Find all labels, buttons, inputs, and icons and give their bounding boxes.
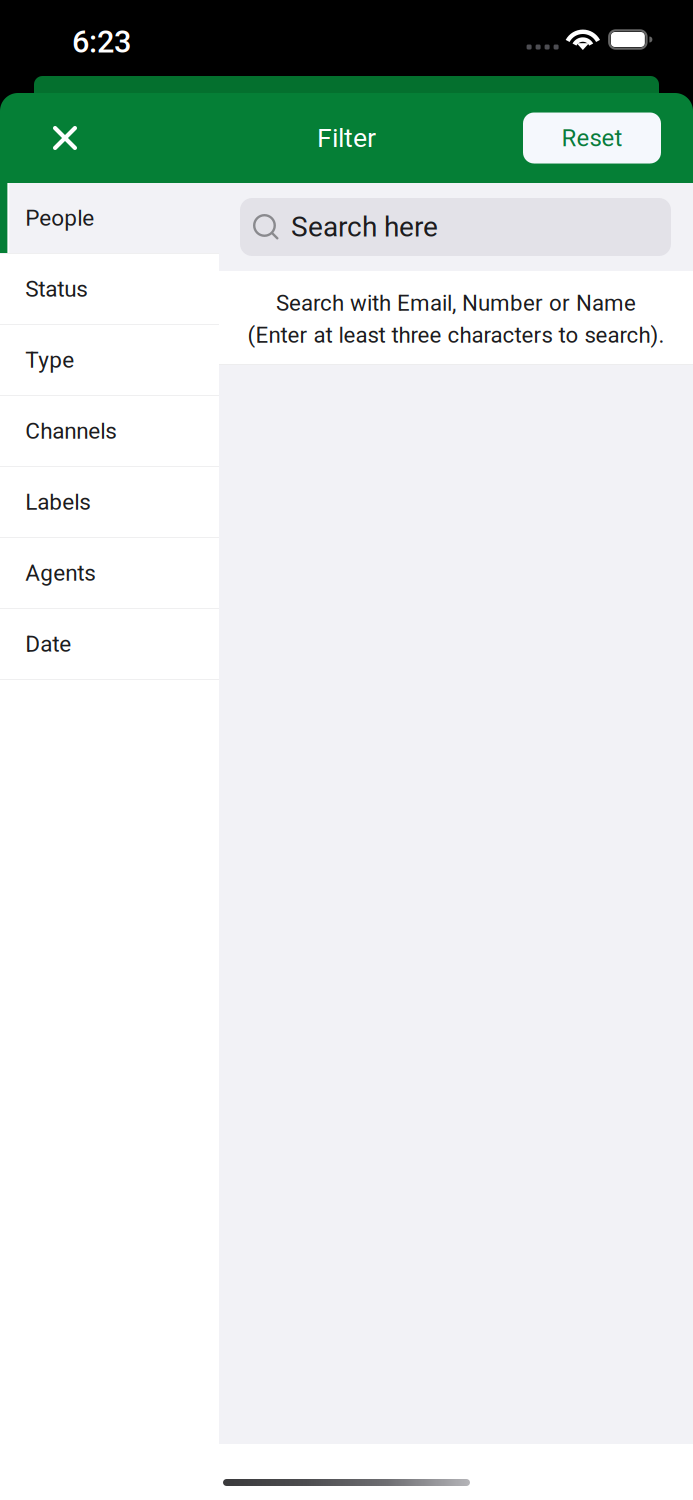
staticText: Channels bbox=[25, 418, 117, 444]
button[interactable]: Channels bbox=[0, 396, 219, 466]
staticText: Agents bbox=[25, 560, 96, 586]
staticText: Labels bbox=[25, 489, 91, 515]
button[interactable]: Status bbox=[0, 254, 219, 324]
staticText: (Enter at least three characters to sear… bbox=[247, 322, 664, 348]
staticText: Status bbox=[25, 276, 88, 302]
staticText: Type bbox=[25, 347, 74, 373]
button[interactable]: Agents bbox=[0, 538, 219, 608]
staticText: Reset bbox=[561, 124, 622, 152]
button[interactable]: Date bbox=[0, 609, 219, 679]
button[interactable]: People bbox=[0, 183, 219, 253]
staticText: People bbox=[25, 205, 94, 231]
staticText: Search here bbox=[291, 211, 438, 243]
staticText: Date bbox=[25, 631, 71, 657]
button[interactable]: Close bbox=[36, 93, 94, 183]
button[interactable]: Type bbox=[0, 325, 219, 395]
staticText: 6:23 bbox=[72, 24, 131, 60]
button[interactable]: Labels bbox=[0, 467, 219, 537]
staticText: Filter bbox=[317, 122, 376, 154]
button[interactable]: Reset bbox=[523, 112, 661, 163]
staticText: Search with Email, Number or Name bbox=[276, 290, 636, 316]
